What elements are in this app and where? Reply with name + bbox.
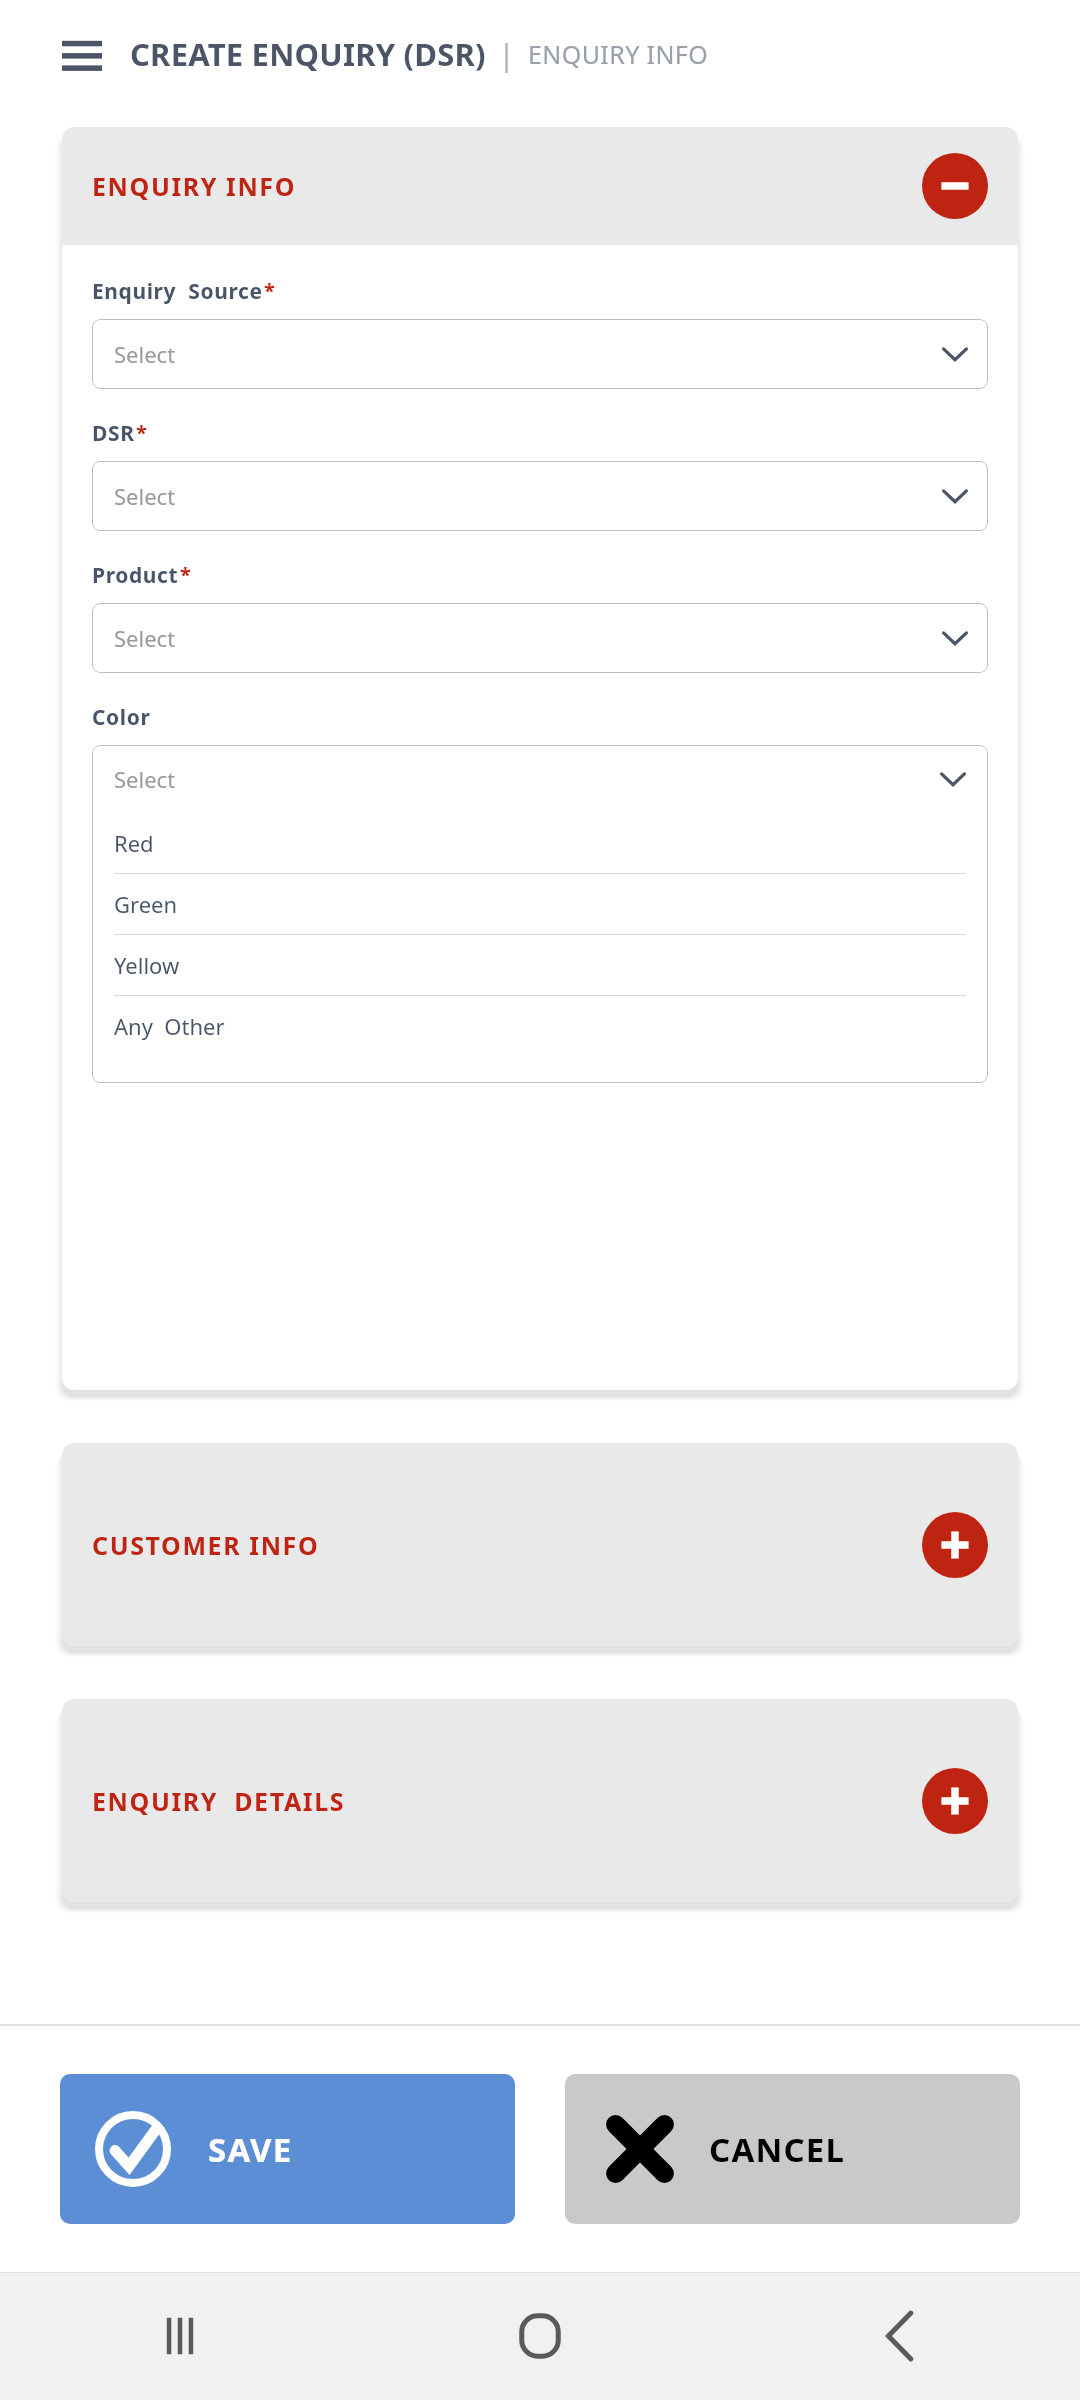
staticText: *: [264, 277, 275, 304]
staticText: |: [498, 33, 516, 75]
button[interactable]: Yellow: [92, 935, 988, 995]
button[interactable]: Expand ENQUIRY DETAILS: [922, 1768, 988, 1834]
button[interactable]: Collapse ENQUIRY INFO: [922, 153, 988, 219]
staticText: Enquiry Source: [92, 277, 263, 306]
button[interactable]: Back: [720, 2272, 1080, 2400]
button[interactable]: CANCEL: [565, 2074, 1020, 2224]
staticText: Yellow: [114, 950, 180, 980]
button[interactable]: Red: [92, 813, 988, 873]
staticText: Select: [114, 339, 176, 369]
button[interactable]: Select: [92, 745, 988, 813]
button[interactable]: Open navigation menu: [56, 28, 108, 80]
button[interactable]: CUSTOMER INFO: [62, 1443, 1018, 1646]
staticText: CANCEL: [709, 2127, 846, 2172]
staticText: Red: [114, 828, 154, 858]
button[interactable]: Green: [92, 874, 988, 934]
staticText: CREATE ENQUIRY (DSR): [130, 33, 486, 75]
staticText: ENQUIRY INFO: [92, 169, 922, 203]
staticText: Color: [92, 703, 151, 732]
button[interactable]: Select: [92, 603, 988, 673]
button[interactable]: Home: [360, 2272, 720, 2400]
button[interactable]: Select: [92, 461, 988, 531]
staticText: SAVE: [208, 2127, 293, 2172]
button[interactable]: Any Other: [92, 996, 988, 1056]
staticText: CUSTOMER INFO: [92, 1528, 922, 1562]
staticText: *: [136, 419, 147, 446]
button[interactable]: Recent apps: [0, 2272, 360, 2400]
staticText: Any Other: [114, 1011, 225, 1041]
staticText: Green: [114, 889, 178, 919]
staticText: Select: [114, 481, 176, 511]
staticText: DSR: [92, 419, 135, 448]
staticText: ENQUIRY INFO: [528, 37, 709, 71]
button[interactable]: SAVE: [60, 2074, 515, 2224]
button[interactable]: Expand CUSTOMER INFO: [922, 1512, 988, 1578]
button[interactable]: ENQUIRY DETAILS: [62, 1699, 1018, 1902]
button[interactable]: ENQUIRY INFO: [62, 127, 1018, 245]
staticText: Select: [114, 623, 176, 653]
staticText: Select: [114, 764, 940, 794]
button[interactable]: Select: [92, 319, 988, 389]
staticText: Product: [92, 561, 179, 590]
staticText: ENQUIRY DETAILS: [92, 1784, 922, 1818]
staticText: *: [180, 561, 191, 588]
